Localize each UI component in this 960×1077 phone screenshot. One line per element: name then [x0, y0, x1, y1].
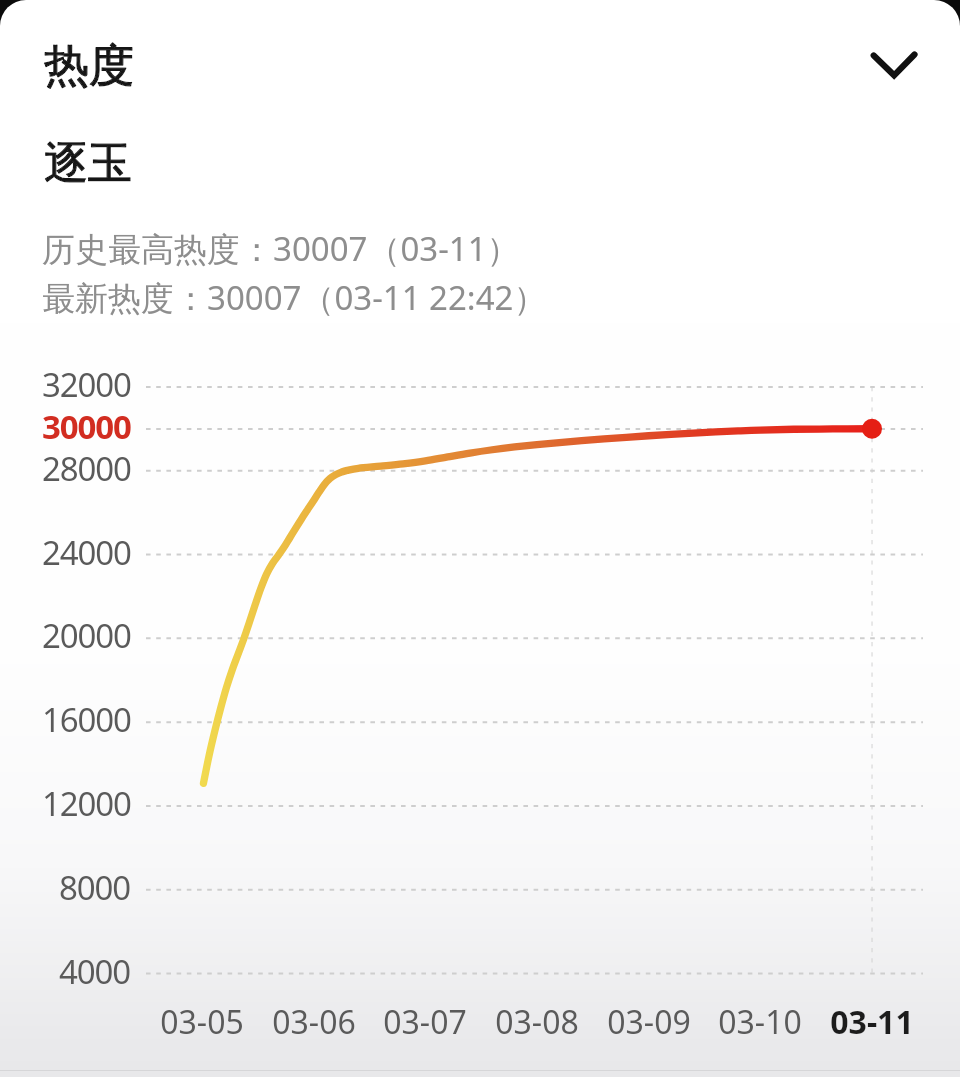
button[interactable]: 逐玉: [30, 132, 190, 194]
staticText: 历史最高热度：30007（03-11）: [42, 226, 520, 270]
staticText: 03-09: [607, 1000, 691, 1044]
staticText: 03-07: [383, 1000, 467, 1044]
staticText: 16000: [42, 697, 131, 742]
staticText: 8000: [59, 865, 131, 910]
staticText: 03-06: [272, 1000, 356, 1044]
staticText: 03-10: [718, 1000, 802, 1044]
staticText: 热度: [44, 38, 134, 95]
button[interactable]: 热度: [30, 28, 170, 104]
staticText: 03-08: [495, 1000, 579, 1044]
staticText: 24000: [42, 530, 131, 575]
staticText: 12000: [42, 781, 131, 826]
staticText: 热度: [44, 38, 134, 95]
staticText: 28000: [42, 446, 131, 491]
staticText: 逐玉: [44, 136, 132, 191]
staticText: 32000: [42, 362, 131, 407]
staticText: 03-05: [160, 1000, 244, 1044]
button[interactable]: Collapse: [854, 25, 930, 101]
staticText: 最新热度：30007（03-11 22:42）: [42, 275, 547, 319]
staticText: 4000: [59, 949, 131, 994]
staticText: 20000: [42, 613, 131, 658]
staticText: 逐玉: [44, 136, 132, 191]
staticText: 30000: [42, 404, 131, 449]
staticText: 03-11: [830, 1000, 914, 1044]
button[interactable]: Popularity trend chart: [0, 360, 960, 1000]
